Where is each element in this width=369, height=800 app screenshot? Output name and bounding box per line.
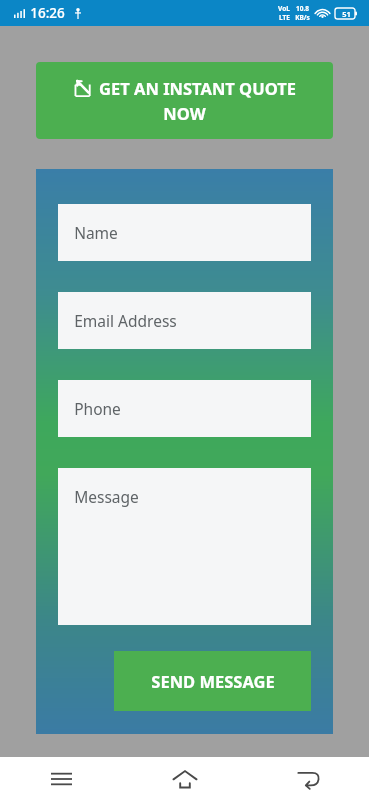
button[interactable]: Name: [58, 204, 311, 261]
button[interactable]: Home: [123, 757, 246, 800]
staticText: NOW: [163, 102, 206, 124]
staticText: Message: [74, 486, 139, 507]
button[interactable]: Back: [246, 757, 369, 800]
staticText: 51: [342, 9, 351, 19]
staticText: VoL: [278, 4, 290, 13]
staticText: LTE: [279, 13, 290, 22]
staticText: KB/s: [295, 13, 310, 22]
staticText: GET AN INSTANT QUOTE: [99, 77, 296, 99]
button[interactable]: GET AN INSTANT QUOTE: [36, 62, 333, 139]
staticText: 16:26: [30, 4, 65, 22]
button[interactable]: Email Address: [58, 292, 311, 349]
button[interactable]: Phone: [58, 380, 311, 437]
staticText: Phone: [74, 398, 121, 419]
staticText: Email Address: [74, 310, 177, 331]
button[interactable]: Message: [58, 468, 311, 625]
staticText: Name: [74, 222, 118, 243]
staticText: SEND MESSAGE: [151, 670, 275, 692]
staticText: 10.8: [296, 4, 309, 13]
button[interactable]: SEND MESSAGE: [114, 651, 311, 711]
button[interactable]: Recent apps: [0, 757, 123, 800]
